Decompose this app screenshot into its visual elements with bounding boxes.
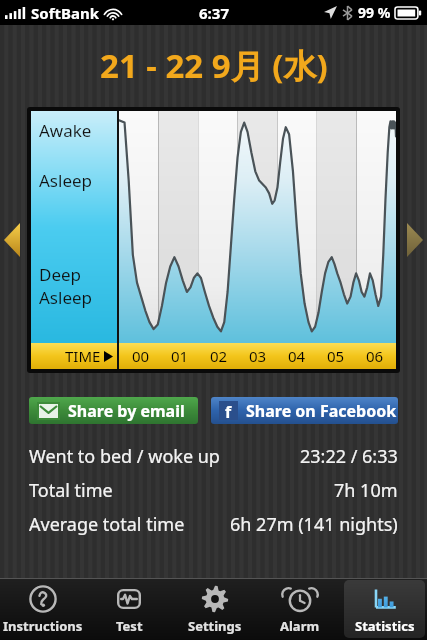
staticText: 03 xyxy=(249,346,267,366)
staticText: 6:37 xyxy=(199,3,229,23)
staticText: 04 xyxy=(288,346,306,366)
staticText: SoftBank xyxy=(31,3,99,23)
staticText: f xyxy=(225,401,232,420)
button[interactable]: Settings xyxy=(174,580,255,638)
button[interactable]: Instructions xyxy=(2,580,84,638)
button[interactable]: Alarm xyxy=(259,580,340,638)
staticText: Average total time xyxy=(29,512,185,537)
staticText: Total time xyxy=(29,478,113,503)
button[interactable]: Previous night xyxy=(0,216,24,264)
staticText: 05 xyxy=(327,346,345,366)
staticText: Alarm xyxy=(280,617,320,635)
staticText: 00 xyxy=(132,346,150,366)
staticText: Test xyxy=(116,617,143,635)
button[interactable]: Next night xyxy=(403,216,427,264)
staticText: Went to bed / woke up xyxy=(29,444,220,469)
button[interactable]: Awake xyxy=(31,111,396,369)
button[interactable]: Average total time xyxy=(29,512,398,537)
button[interactable]: Statistics xyxy=(344,580,425,638)
button[interactable]: Total time xyxy=(29,478,398,503)
staticText: 23:22 / 6:33 xyxy=(300,444,398,469)
staticText: 99 % xyxy=(358,3,391,22)
staticText: 21 - 22 9月 (水) xyxy=(100,43,328,88)
staticText: Share by email xyxy=(68,400,185,422)
staticText: Awake xyxy=(39,119,92,142)
staticText: 06 xyxy=(366,346,384,366)
staticText: Settings xyxy=(188,617,242,635)
staticText: Asleep xyxy=(39,169,93,192)
staticText: 01 xyxy=(171,346,189,366)
button[interactable]: Went to bed / woke up xyxy=(29,444,398,469)
staticText: TIME xyxy=(65,346,101,366)
staticText: Share on Facebook xyxy=(246,400,397,422)
staticText: 02 xyxy=(210,346,228,366)
staticText: 6h 27m (141 nights) xyxy=(230,512,398,537)
button[interactable]: Test xyxy=(88,580,170,638)
staticText: Instructions xyxy=(3,617,83,635)
staticText: Asleep xyxy=(39,286,93,309)
button[interactable]: Share by email xyxy=(29,397,198,424)
button[interactable]: f xyxy=(211,397,398,424)
staticText: Statistics xyxy=(355,617,415,635)
staticText: Deep xyxy=(39,263,82,286)
staticText: 7h 10m xyxy=(334,478,398,503)
